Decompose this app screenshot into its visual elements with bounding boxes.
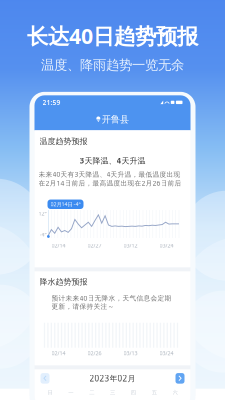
staticText: 四 (131, 389, 136, 396)
staticText: 长达40日趋势预报 (27, 22, 198, 50)
staticText: 02/14 (51, 242, 65, 249)
button[interactable]: 上个月 (40, 373, 49, 384)
staticText: 02/14 (51, 350, 65, 357)
staticText: 3天降温、4天升温 (79, 155, 145, 166)
staticText: 02/27 (87, 242, 101, 249)
staticText: 03/24 (159, 242, 173, 249)
staticText: 一 (68, 389, 73, 396)
staticText: 12° (38, 210, 46, 217)
staticText: 预计未来40日无降水，天气信息会定期更新，请保持关注～ (51, 294, 171, 311)
staticText: 二 (89, 389, 94, 396)
staticText: 21:59 (42, 98, 60, 107)
staticText: 六 (173, 389, 178, 396)
staticText: 03/12 (123, 242, 137, 249)
staticText: 2023年02月 (89, 373, 135, 384)
staticText: 未来40天有3天降温、4天升温，最低温度出现在2月14日前后，最高温度出现在2月… (38, 170, 181, 187)
staticText: 三 (110, 389, 115, 396)
staticText: 五 (152, 389, 157, 396)
staticText: 温度趋势预报 (39, 136, 87, 146)
staticText: 02月14日 -4° (50, 201, 80, 208)
button[interactable]: 下个月 (175, 373, 184, 384)
staticText: -4° (39, 231, 46, 238)
staticText: 降水趋势预报 (39, 277, 87, 287)
staticText: 温度、降雨趋势一览无余 (41, 57, 184, 73)
staticText: 03/13 (123, 350, 137, 357)
staticText: 02/26 (87, 350, 101, 357)
staticText: 开鲁县 (102, 114, 129, 125)
staticText: 03/24 (159, 350, 173, 357)
staticText: 日 (47, 389, 52, 396)
